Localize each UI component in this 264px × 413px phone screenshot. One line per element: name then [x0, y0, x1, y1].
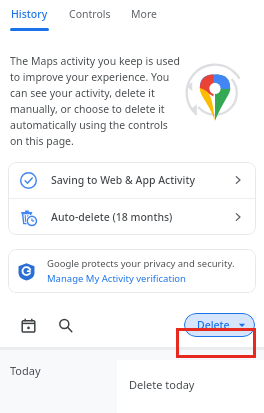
button[interactable]: Saving to Web & App Activity	[8, 162, 256, 198]
button[interactable]: Delete	[184, 313, 255, 337]
button[interactable]: Auto-delete (18 months)	[8, 199, 256, 235]
staticText: Delete today	[129, 377, 195, 392]
staticText: Delete	[197, 318, 230, 332]
button[interactable]: Search	[54, 314, 76, 336]
button[interactable]: More	[121, 0, 167, 33]
staticText: History	[11, 7, 48, 21]
button[interactable]: Google protects your privacy and securit…	[8, 249, 256, 293]
staticText: Google protects your privacy and securit…	[47, 257, 235, 270]
button[interactable]: Filter by date	[17, 314, 39, 336]
staticText: Manage My Activity verification	[47, 272, 186, 285]
staticText: The Maps activity you keep is used to im…	[10, 54, 180, 148]
staticText: Today	[10, 363, 41, 378]
button[interactable]: Delete today	[117, 360, 264, 413]
staticText: Auto-delete (18 months)	[51, 210, 173, 224]
staticText: More	[131, 7, 157, 21]
staticText: Controls	[69, 7, 111, 21]
staticText: Saving to Web & App Activity	[51, 173, 195, 187]
button[interactable]: History	[0, 0, 59, 33]
button[interactable]: Controls	[59, 0, 121, 33]
